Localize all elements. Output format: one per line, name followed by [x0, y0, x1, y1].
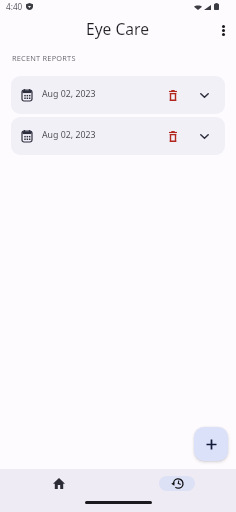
button[interactable]: History: [118, 475, 236, 491]
staticText: Aug 02, 2023: [42, 88, 96, 100]
button[interactable]: Delete: [162, 125, 184, 147]
button[interactable]: Add report: [194, 427, 228, 461]
button[interactable]: Home: [0, 475, 118, 491]
staticText: Aug 02, 2023: [42, 129, 96, 141]
button[interactable]: Expand: [193, 84, 215, 106]
button[interactable]: Expand: [193, 125, 215, 147]
staticText: Eye Care: [86, 18, 149, 39]
button[interactable]: More options: [210, 17, 236, 43]
staticText: RECENT REPORTS: [12, 53, 76, 63]
button[interactable]: Aug 02, 2023: [11, 76, 225, 114]
button[interactable]: Delete: [162, 84, 184, 106]
button[interactable]: Aug 02, 2023: [11, 117, 225, 155]
staticText: 4:40: [6, 1, 23, 12]
